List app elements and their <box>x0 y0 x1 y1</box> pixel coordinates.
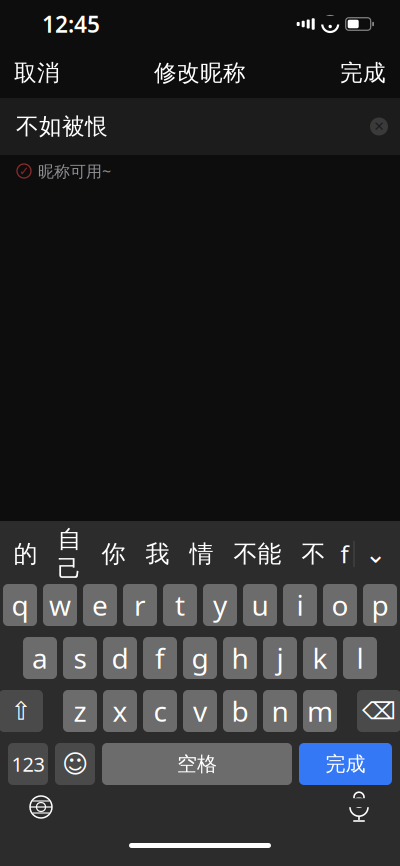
staticText: x <box>112 692 127 730</box>
button[interactable]: 删除 <box>357 690 400 732</box>
button[interactable]: t <box>163 584 197 626</box>
staticText: ⌄ <box>365 540 386 568</box>
staticText: t <box>175 586 185 624</box>
staticText: 完成 <box>325 752 365 776</box>
button[interactable]: 自己 <box>47 531 91 577</box>
staticText: 不能 <box>233 539 281 569</box>
button[interactable]: n <box>263 690 297 732</box>
button[interactable]: x <box>103 690 137 732</box>
staticText: c <box>153 692 166 730</box>
staticText: o <box>331 586 348 624</box>
staticText: e <box>92 586 108 624</box>
button[interactable]: 完成 <box>299 743 392 785</box>
staticText: ✓ <box>19 164 29 178</box>
button[interactable]: 清除 <box>358 101 400 151</box>
staticText: z <box>73 692 86 730</box>
button[interactable]: p <box>363 584 397 626</box>
staticText: 你 <box>101 539 125 569</box>
staticText: f <box>340 538 348 570</box>
button[interactable]: y <box>203 584 237 626</box>
staticText: k <box>312 639 327 677</box>
staticText: 123 <box>11 751 44 777</box>
staticText: p <box>371 586 388 624</box>
button[interactable]: z <box>63 690 97 732</box>
staticText: 自己 <box>57 524 81 583</box>
button[interactable]: o <box>323 584 357 626</box>
staticText: 修改昵称 <box>154 59 246 87</box>
button[interactable]: d <box>103 637 137 679</box>
staticText: ⌫ <box>362 697 396 725</box>
staticText: q <box>11 586 28 624</box>
staticText: 不 <box>301 539 325 569</box>
staticText: ✕ <box>373 119 384 134</box>
button[interactable]: v <box>183 690 217 732</box>
staticText: y <box>213 586 227 624</box>
button[interactable]: e <box>83 584 117 626</box>
staticText: 完成 <box>340 59 386 87</box>
button[interactable]: 切换键盘 <box>16 785 66 829</box>
staticText: g <box>191 639 208 677</box>
staticText: 12:45 <box>42 9 100 39</box>
button[interactable]: j <box>263 637 297 679</box>
staticText: a <box>32 639 48 677</box>
button[interactable]: h <box>223 637 257 679</box>
button[interactable]: g <box>183 637 217 679</box>
staticText: ⇧ <box>10 697 31 725</box>
staticText: u <box>251 586 268 624</box>
button[interactable]: i <box>283 584 317 626</box>
staticText: r <box>134 586 146 624</box>
staticText: 取消 <box>14 59 60 87</box>
button[interactable]: a <box>23 637 57 679</box>
staticText: m <box>307 692 333 730</box>
button[interactable]: 表情键盘 <box>55 743 95 785</box>
staticText: i <box>296 586 303 624</box>
button[interactable]: 的 <box>3 531 47 577</box>
button[interactable]: s <box>63 637 97 679</box>
staticText: n <box>271 692 288 730</box>
button[interactable]: 不 <box>291 531 335 577</box>
button[interactable]: m <box>303 690 337 732</box>
button[interactable]: 收起候选词 <box>354 531 396 577</box>
button[interactable]: u <box>243 584 277 626</box>
button[interactable]: c <box>143 690 177 732</box>
button[interactable]: 语音输入 <box>334 785 384 829</box>
staticText: s <box>73 639 86 677</box>
staticText: 的 <box>13 539 37 569</box>
staticText: j <box>276 639 283 677</box>
staticText: b <box>231 692 248 730</box>
staticText: ☺ <box>62 750 88 778</box>
staticText: d <box>111 639 128 677</box>
staticText: 昵称可用~ <box>38 160 111 182</box>
button[interactable]: 123 <box>8 743 48 785</box>
staticText: 情 <box>189 539 213 569</box>
button[interactable]: 大写切换 <box>0 690 43 732</box>
button[interactable]: 空格 <box>102 743 292 785</box>
button[interactable]: r <box>123 584 157 626</box>
button[interactable]: 你 <box>91 531 135 577</box>
button[interactable]: w <box>43 584 77 626</box>
staticText: v <box>193 692 207 730</box>
staticText: h <box>231 639 248 677</box>
button[interactable]: b <box>223 690 257 732</box>
staticText: 我 <box>145 539 169 569</box>
button[interactable]: 取消 <box>0 48 74 98</box>
button[interactable]: l <box>343 637 377 679</box>
button[interactable]: 完成 <box>326 48 400 98</box>
staticText: 不如被恨 <box>16 113 108 140</box>
button[interactable]: 情 <box>179 531 223 577</box>
button[interactable]: 不能 <box>223 531 291 577</box>
button[interactable]: q <box>3 584 37 626</box>
staticText: 空格 <box>177 752 217 776</box>
staticText: l <box>356 639 363 677</box>
button[interactable]: 我 <box>135 531 179 577</box>
button[interactable]: f <box>143 637 177 679</box>
staticText: w <box>49 586 71 624</box>
staticText: f <box>155 639 165 677</box>
button[interactable]: k <box>303 637 337 679</box>
